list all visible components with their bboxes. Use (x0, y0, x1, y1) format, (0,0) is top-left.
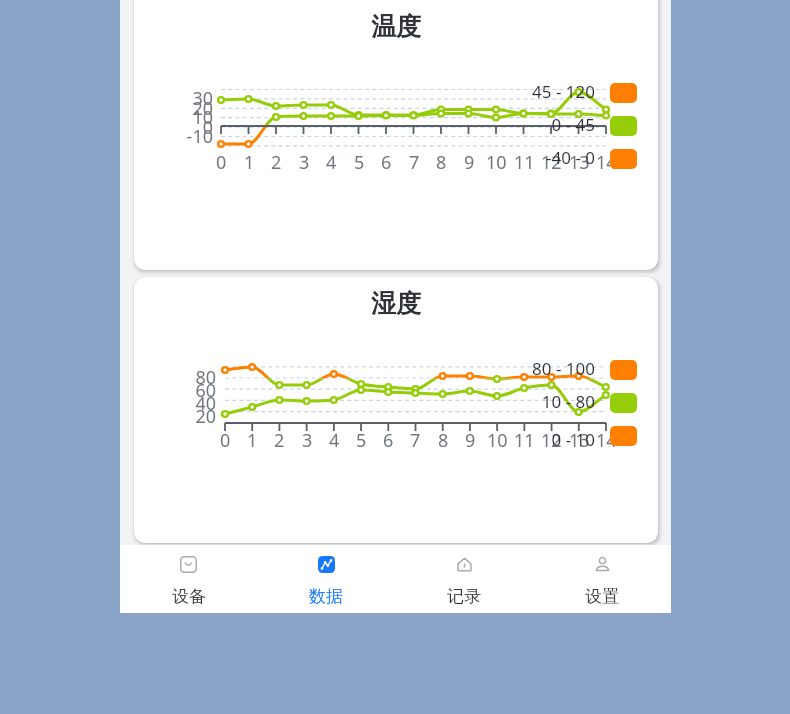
staticText: 20 (192, 96, 213, 118)
staticText: 5 (356, 428, 367, 453)
staticText: 4 (329, 428, 340, 453)
staticText: 40 (195, 391, 216, 413)
staticText: 温度 (371, 11, 421, 42)
staticText: 设置 (585, 586, 619, 607)
staticText: 6 (381, 150, 392, 175)
staticText: 记录 (447, 586, 481, 607)
staticText: 湿度 (371, 288, 421, 319)
staticText: 14 (596, 150, 617, 175)
staticText: 60 (195, 378, 216, 400)
staticText: 80 - 100 (532, 357, 595, 377)
staticText: 12 (541, 428, 562, 453)
staticText: 4 (326, 150, 337, 175)
staticText: 3 (299, 150, 310, 175)
staticText: 20 (195, 404, 216, 426)
staticText: 11 (514, 428, 535, 453)
staticText: 10 - 80 (541, 390, 595, 410)
staticText: 10 (487, 428, 508, 453)
staticText: 10 (486, 150, 507, 175)
staticText: 0 - 45 (551, 113, 595, 133)
staticText: -40 - 0 (546, 146, 595, 166)
staticText: 8 (436, 150, 447, 175)
staticText: 8 (438, 428, 449, 453)
staticText: 5 (354, 150, 365, 175)
staticText: 9 (464, 150, 475, 175)
staticText: 30 (192, 86, 213, 108)
staticText: 80 (195, 365, 216, 387)
staticText: 9 (465, 428, 476, 453)
staticText: 1 (247, 428, 258, 453)
staticText: 13 (569, 428, 590, 453)
staticText: 7 (409, 150, 420, 175)
staticText: 7 (410, 428, 421, 453)
staticText: 1 (244, 150, 255, 175)
button[interactable]: 设置 (533, 545, 671, 583)
staticText: 13 (569, 150, 590, 175)
staticText: 6 (383, 428, 394, 453)
staticText: 2 (274, 428, 285, 453)
button[interactable]: 记录 (395, 545, 533, 583)
staticText: 45 - 120 (532, 80, 595, 100)
staticText: 0 (220, 428, 231, 453)
staticText: 0 - 10 (551, 428, 595, 448)
staticText: 14 (596, 428, 617, 453)
staticText: 设备 (172, 586, 206, 607)
staticText: 12 (541, 150, 562, 175)
staticText: 0 (202, 115, 213, 137)
button[interactable]: 设备 (120, 545, 257, 583)
staticText: 0 (216, 150, 227, 175)
staticText: -10 (186, 124, 213, 146)
button[interactable]: 数据 (257, 545, 395, 583)
staticText: 3 (302, 428, 313, 453)
staticText: 数据 (309, 586, 343, 607)
staticText: 2 (271, 150, 282, 175)
staticText: 10 (192, 105, 213, 127)
staticText: 11 (514, 150, 535, 175)
